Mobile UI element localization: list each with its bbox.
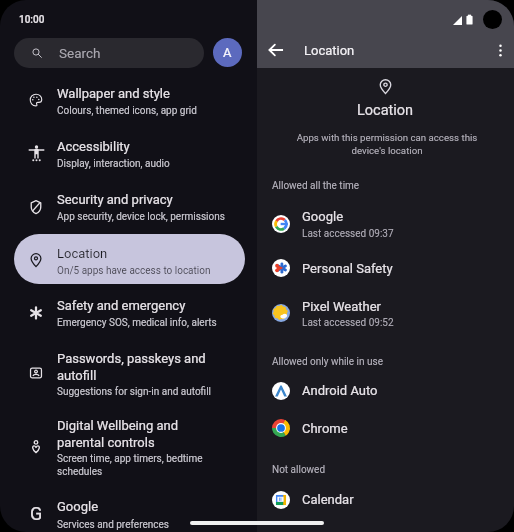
- staticText: Location: [57, 246, 108, 261]
- staticText: Display, interaction, audio: [57, 158, 170, 170]
- button[interactable]: [14, 342, 245, 408]
- staticText: schedules: [57, 466, 103, 478]
- staticText: Personal Safety: [302, 261, 393, 276]
- staticText: autofill: [57, 368, 97, 383]
- staticText: Safety and emergency: [57, 298, 186, 313]
- button[interactable]: [14, 76, 245, 126]
- button[interactable]: [14, 409, 245, 475]
- staticText: Location: [304, 43, 355, 58]
- staticText: Accessibility: [57, 139, 130, 154]
- staticText: Search: [59, 45, 101, 61]
- button[interactable]: [14, 234, 245, 284]
- button[interactable]: Back: [262, 36, 290, 64]
- staticText: Google: [302, 209, 344, 224]
- staticText: Passwords, passkeys and: [57, 351, 206, 366]
- staticText: Security and privacy: [57, 192, 173, 207]
- button[interactable]: Search: [14, 38, 204, 68]
- staticText: Screen time, app timers, bedtime: [57, 453, 203, 465]
- staticText: On/5 apps have access to location: [57, 265, 211, 277]
- button[interactable]: [257, 409, 514, 447]
- staticText: G: [30, 503, 43, 524]
- button[interactable]: More options: [486, 36, 514, 64]
- staticText: Suggestions for sign-in and autofill: [57, 386, 212, 398]
- button[interactable]: Account: [213, 38, 242, 67]
- button[interactable]: [14, 182, 245, 232]
- staticText: 10:00: [19, 14, 45, 26]
- button[interactable]: [14, 236, 245, 286]
- staticText: Apps with this permission can access thi…: [287, 132, 487, 156]
- staticText: Colours, themed icons, app grid: [57, 105, 197, 117]
- button[interactable]: [14, 489, 245, 532]
- button[interactable]: [257, 372, 514, 410]
- staticText: A: [223, 45, 232, 60]
- staticText: Calendar: [302, 492, 354, 507]
- staticText: parental controls: [57, 435, 155, 450]
- staticText: Services and preferences: [57, 519, 169, 531]
- button[interactable]: [257, 481, 514, 519]
- staticText: Location: [357, 102, 414, 119]
- staticText: App security, device lock, permissions: [57, 211, 225, 223]
- staticText: Not allowed: [272, 464, 326, 476]
- staticText: Emergency SOS, medical info, alerts: [57, 317, 217, 329]
- staticText: Digital Wellbeing and: [57, 418, 179, 433]
- button[interactable]: [14, 288, 245, 338]
- staticText: Pixel Weather: [302, 299, 381, 314]
- button[interactable]: [257, 205, 514, 243]
- staticText: Wallpaper and style: [57, 86, 170, 101]
- staticText: Last accessed 09:52: [302, 317, 394, 329]
- button[interactable]: [257, 249, 514, 287]
- button[interactable]: [257, 294, 514, 332]
- staticText: Allowed only while in use: [272, 356, 383, 368]
- staticText: Last accessed 09:37: [302, 228, 394, 240]
- button[interactable]: [14, 129, 245, 179]
- staticText: Allowed all the time: [272, 180, 360, 192]
- staticText: Google: [57, 499, 99, 514]
- staticText: Chrome: [302, 421, 348, 436]
- staticText: Android Auto: [302, 383, 378, 398]
